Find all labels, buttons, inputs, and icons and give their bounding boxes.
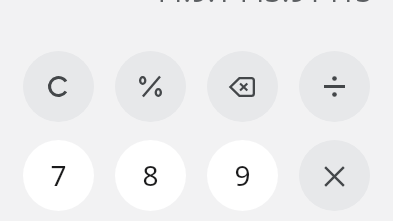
staticText: 44.9.1443.91413 — [150, 0, 373, 10]
staticText: 8 — [142, 156, 159, 194]
staticText: 7 — [50, 156, 67, 194]
button[interactable]: Multiply — [299, 140, 370, 211]
button[interactable]: Divide — [299, 51, 370, 122]
button[interactable]: Backspace — [207, 51, 278, 122]
staticText: 9 — [234, 156, 251, 194]
button[interactable]: Clear — [23, 51, 94, 122]
button[interactable]: Percent — [115, 51, 186, 122]
button[interactable]: 8 — [115, 140, 186, 211]
button[interactable]: 9 — [207, 140, 278, 211]
button[interactable]: 7 — [23, 140, 94, 211]
